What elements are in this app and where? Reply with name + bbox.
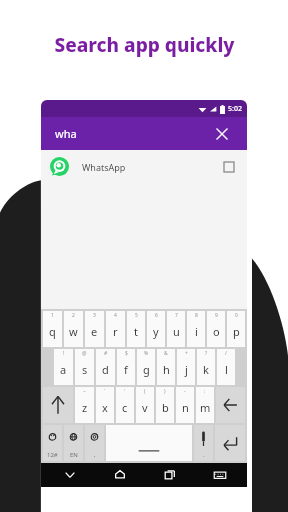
button[interactable]: 2: [64, 311, 83, 347]
staticText: wha: [55, 126, 77, 141]
button[interactable]: 6: [147, 311, 165, 347]
button[interactable]: -: [176, 387, 194, 423]
button[interactable]: 4: [106, 311, 125, 347]
staticText: n: [182, 400, 189, 415]
staticText: b: [162, 400, 169, 415]
staticText: p: [233, 324, 240, 339]
button[interactable]: (: [136, 387, 154, 423]
staticText: ~: [83, 388, 86, 395]
staticText: 4: [114, 312, 117, 319]
staticText: +: [185, 350, 188, 357]
staticText: l: [225, 362, 228, 377]
staticText: !: [63, 350, 65, 357]
button[interactable]: %: [137, 349, 155, 385]
staticText: s: [82, 362, 88, 377]
staticText: m: [200, 400, 211, 415]
staticText: #: [104, 350, 108, 357]
button[interactable]: $: [117, 349, 135, 385]
staticText: u: [173, 324, 180, 339]
staticText: 1: [51, 312, 54, 319]
staticText: `: [104, 388, 106, 395]
staticText: 3: [93, 312, 96, 319]
staticText: o: [213, 324, 220, 339]
button[interactable]: Enter: [215, 425, 245, 461]
staticText: e: [91, 324, 98, 339]
staticText: f: [124, 362, 128, 377]
staticText: q: [49, 324, 56, 339]
staticText: @: [82, 350, 87, 357]
button[interactable]: Backspace: [216, 387, 245, 423]
button[interactable]: &: [157, 349, 175, 385]
button[interactable]: ?: [197, 349, 215, 385]
staticText: (: [144, 388, 146, 395]
staticText: -: [184, 388, 186, 395]
button[interactable]: Home: [108, 463, 132, 487]
button[interactable]: 8: [187, 311, 205, 347]
staticText: j: [185, 362, 188, 377]
staticText: a: [60, 362, 67, 377]
staticText: 12#: [47, 451, 58, 459]
staticText: c: [122, 400, 128, 415]
button[interactable]: Select WhatsApp: [220, 158, 238, 176]
button[interactable]: Clear search: [211, 123, 233, 145]
button[interactable]: ': [116, 387, 134, 423]
staticText: 5:02: [228, 104, 242, 114]
staticText: t: [134, 324, 138, 339]
button[interactable]: Language: [64, 425, 83, 461]
staticText: WhatsApp: [82, 161, 126, 173]
button[interactable]: Symbols: [43, 425, 62, 461]
button[interactable]: 9: [207, 311, 225, 347]
staticText: i: [195, 324, 198, 339]
button[interactable]: #: [96, 349, 115, 385]
staticText: Search app quickly: [54, 32, 235, 58]
staticText: /: [225, 350, 227, 357]
button[interactable]: 0: [227, 311, 245, 347]
button[interactable]: 7: [167, 311, 185, 347]
staticText: 6: [155, 312, 158, 319]
staticText: 8: [195, 312, 198, 319]
button[interactable]: 1: [43, 311, 62, 347]
button[interactable]: Settings: [85, 425, 104, 461]
button[interactable]: Keyboard: [208, 463, 232, 487]
button[interactable]: WhatsApp: [41, 150, 247, 183]
staticText: 2: [72, 312, 75, 319]
button[interactable]: Recents: [158, 463, 182, 487]
staticText: ,: [94, 451, 96, 459]
staticText: d: [102, 362, 109, 377]
button[interactable]: 5: [127, 311, 145, 347]
button[interactable]: ~: [75, 387, 94, 423]
button[interactable]: /: [217, 349, 235, 385]
staticText: k: [203, 362, 209, 377]
staticText: ): [164, 388, 166, 395]
staticText: .: [203, 451, 205, 459]
staticText: ': [124, 388, 126, 395]
staticText: v: [142, 400, 148, 415]
staticText: y: [153, 324, 159, 339]
staticText: 7: [175, 312, 178, 319]
staticText: h: [163, 362, 170, 377]
staticText: EN: [70, 451, 78, 459]
button[interactable]: Shift: [43, 387, 73, 423]
button[interactable]: `: [96, 387, 114, 423]
button[interactable]: :: [196, 387, 214, 423]
staticText: 5: [135, 312, 138, 319]
button[interactable]: Voice input: [194, 425, 213, 461]
staticText: :: [204, 388, 206, 395]
staticText: z: [82, 400, 88, 415]
staticText: r: [113, 324, 118, 339]
button[interactable]: +: [177, 349, 195, 385]
button[interactable]: Space: [106, 425, 192, 461]
button[interactable]: Back: [58, 463, 82, 487]
staticText: &: [164, 350, 168, 357]
staticText: x: [102, 400, 108, 415]
button[interactable]: ): [156, 387, 174, 423]
staticText: %: [144, 350, 149, 357]
staticText: ?: [205, 350, 208, 357]
button[interactable]: !: [54, 349, 73, 385]
staticText: 9: [215, 312, 218, 319]
staticText: g: [143, 362, 150, 377]
button[interactable]: wha: [41, 117, 247, 150]
button[interactable]: 3: [85, 311, 104, 347]
button[interactable]: @: [75, 349, 94, 385]
staticText: $: [125, 350, 128, 357]
